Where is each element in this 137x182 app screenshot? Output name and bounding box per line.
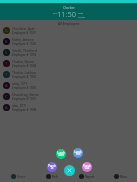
staticText: Thakur, Raven [12,59,35,64]
button[interactable]: S [0,47,137,58]
staticText: Wed [78,11,83,14]
staticText: Employee # 1003 [12,53,37,57]
staticText: Lunch End [74,150,82,156]
button[interactable]: A [0,102,137,113]
staticText: Employee # 1002 [12,42,37,46]
staticText: A [5,28,8,33]
button[interactable]: Home [0,171,35,182]
staticText: Employee # 1006 [12,86,37,90]
staticText: More [120,175,127,179]
staticText: T [5,72,8,77]
button[interactable]: T [0,58,137,69]
staticText: Smith, Thatford [12,48,37,53]
staticText: Punch Out [83,164,91,170]
button[interactable]: Close actions menu [64,165,75,176]
staticText: A [5,105,8,110]
staticText: Chechen, Ayat [12,26,35,31]
staticText: K [5,39,8,44]
staticText: Punch In [48,164,56,170]
staticText: T [5,61,8,66]
staticText: Kathy, Amora [12,37,34,42]
button[interactable]: A [0,25,137,36]
staticText: All Employees [58,21,80,25]
staticText: Thakur, Lakhan [12,70,37,75]
button[interactable]: Lunch End [73,148,83,158]
staticText: Home [17,175,25,179]
staticText: C [5,94,8,99]
staticText: Employee # 1008 [12,108,37,112]
staticText: PM [53,11,57,14]
button[interactable]: C [0,91,137,102]
button[interactable]: Punch In [47,162,57,172]
button[interactable]: T [0,69,137,80]
staticText: Employee # 1007 [12,97,37,101]
staticText: Lunch Start [57,151,65,157]
button[interactable]: A [0,80,137,91]
staticText: Employee # 1004 [12,64,37,68]
button[interactable]: Report [69,171,103,182]
staticText: S [5,50,8,55]
staticText: Employee # 1001 [12,31,37,35]
button[interactable]: Lunch Start [56,149,66,159]
button[interactable]: Shift [35,171,69,182]
staticText: Chandrag, Rama [12,92,39,97]
button[interactable]: Punch Out [82,162,92,172]
staticText: Shift [52,175,58,179]
staticText: amp, DFT [12,81,28,86]
staticText: A [5,83,8,88]
staticText: Report [85,175,94,179]
button[interactable]: More [103,171,137,182]
button[interactable]: K [0,36,137,47]
staticText: 18 Jun [78,15,85,18]
staticText: 11:50 [57,9,76,19]
staticText: Employee # 1005 [12,75,37,79]
staticText: Clocker [63,5,75,10]
staticText: aba, DTY [12,103,26,108]
